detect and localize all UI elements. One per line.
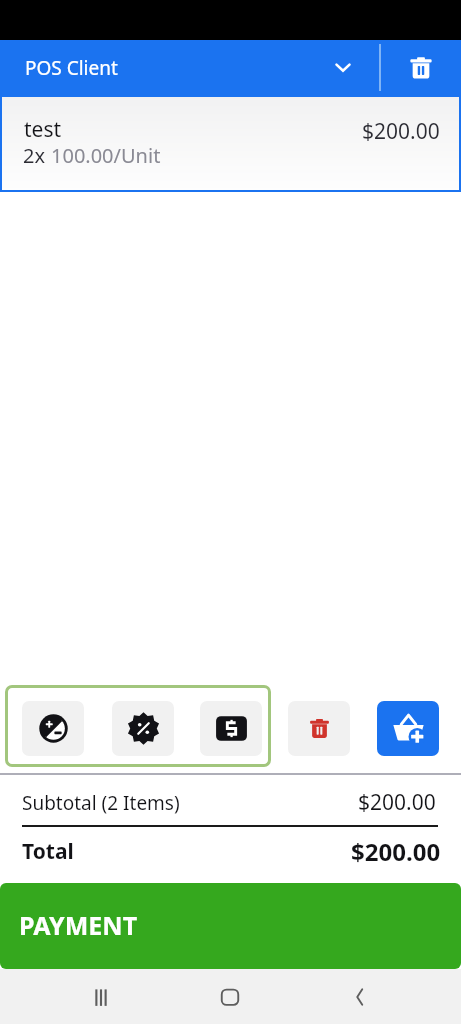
staticText: $200.00 xyxy=(362,117,440,146)
staticText: test xyxy=(24,115,62,144)
staticText: 100.00/Unit xyxy=(51,142,161,169)
staticText: $200.00 xyxy=(358,788,436,817)
button[interactable]: PAYMENT xyxy=(0,883,461,969)
staticText: Total xyxy=(22,837,74,866)
staticText: PAYMENT xyxy=(19,908,138,942)
button[interactable]: Discount xyxy=(112,701,174,756)
button[interactable]: Price adjust xyxy=(22,701,84,756)
button[interactable]: Add item to basket xyxy=(377,701,439,756)
button[interactable]: Delete all xyxy=(381,40,461,95)
button[interactable]: Recent apps xyxy=(74,969,128,1024)
staticText: 2x xyxy=(23,142,51,169)
button[interactable]: Home xyxy=(203,969,257,1024)
button[interactable]: Back xyxy=(332,969,386,1024)
button[interactable]: POS Client xyxy=(0,40,380,95)
staticText: POS Client xyxy=(25,55,118,81)
staticText: Subtotal (2 Items) xyxy=(22,790,180,816)
button[interactable]: Clear cart xyxy=(288,701,350,756)
button[interactable]: Cash xyxy=(200,701,262,756)
button[interactable]: test xyxy=(0,95,461,192)
staticText: $200.00 xyxy=(351,835,441,868)
